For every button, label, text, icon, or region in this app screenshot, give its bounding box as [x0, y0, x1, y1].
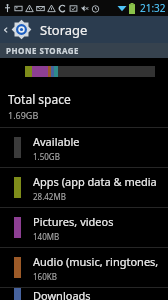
- staticText: Downloads: [33, 288, 91, 300]
- button[interactable]: Available: [0, 128, 168, 167]
- button[interactable]: Downloads: [0, 288, 168, 300]
- staticText: Apps (app data & media content): [33, 174, 168, 189]
- staticText: Audio (music, ringtones, podcasts): [33, 254, 168, 269]
- button[interactable]: Navigate up, Settings: [0, 19, 34, 40]
- staticText: 140MB: [33, 231, 60, 242]
- button[interactable]: Total space: [0, 89, 168, 127]
- button[interactable]: Audio (music, ringtones, podcasts): [0, 248, 168, 287]
- staticText: Available: [33, 134, 80, 149]
- staticText: 160KB: [33, 271, 57, 282]
- button[interactable]: Pictures, videos: [0, 208, 168, 247]
- staticText: 28.42MB: [33, 191, 66, 202]
- staticText: 1.69GB: [8, 109, 39, 121]
- staticText: Storage: [40, 21, 88, 39]
- staticText: PHONE STORAGE: [6, 45, 80, 56]
- staticText: 21:32: [140, 1, 166, 15]
- staticText: Total space: [8, 91, 71, 107]
- staticText: 1.50GB: [33, 151, 60, 162]
- button[interactable]: Apps (app data & media content): [0, 168, 168, 207]
- staticText: Pictures, videos: [33, 214, 114, 229]
